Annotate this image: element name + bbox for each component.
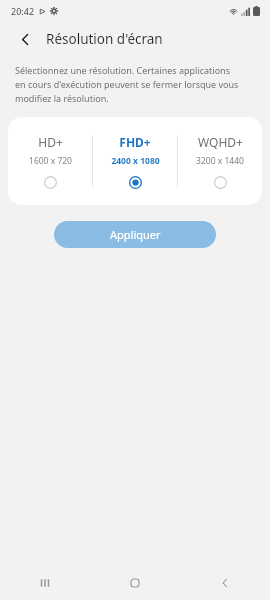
- staticText: 1600 x 720: [29, 155, 72, 167]
- staticText: FHD+: [119, 134, 151, 150]
- staticText: Résolution d'écran: [46, 30, 163, 48]
- button[interactable]: Appliquer: [54, 221, 216, 248]
- button[interactable]: HD+: [8, 124, 92, 199]
- staticText: 3200 x 1440: [196, 155, 244, 167]
- button[interactable]: Back: [12, 26, 38, 52]
- button[interactable]: Recent apps: [0, 566, 90, 600]
- button[interactable]: FHD+: [93, 124, 177, 199]
- button[interactable]: Back: [180, 566, 270, 600]
- button[interactable]: Home: [90, 566, 180, 600]
- button[interactable]: WQHD+: [178, 124, 262, 199]
- staticText: Sélectionnez une résolution. Certaines a…: [15, 64, 239, 105]
- staticText: Appliquer: [110, 227, 161, 242]
- staticText: 2400 x 1080: [111, 155, 160, 167]
- staticText: WQHD+: [198, 134, 243, 150]
- staticText: 20:42: [11, 5, 35, 17]
- staticText: HD+: [38, 134, 63, 150]
